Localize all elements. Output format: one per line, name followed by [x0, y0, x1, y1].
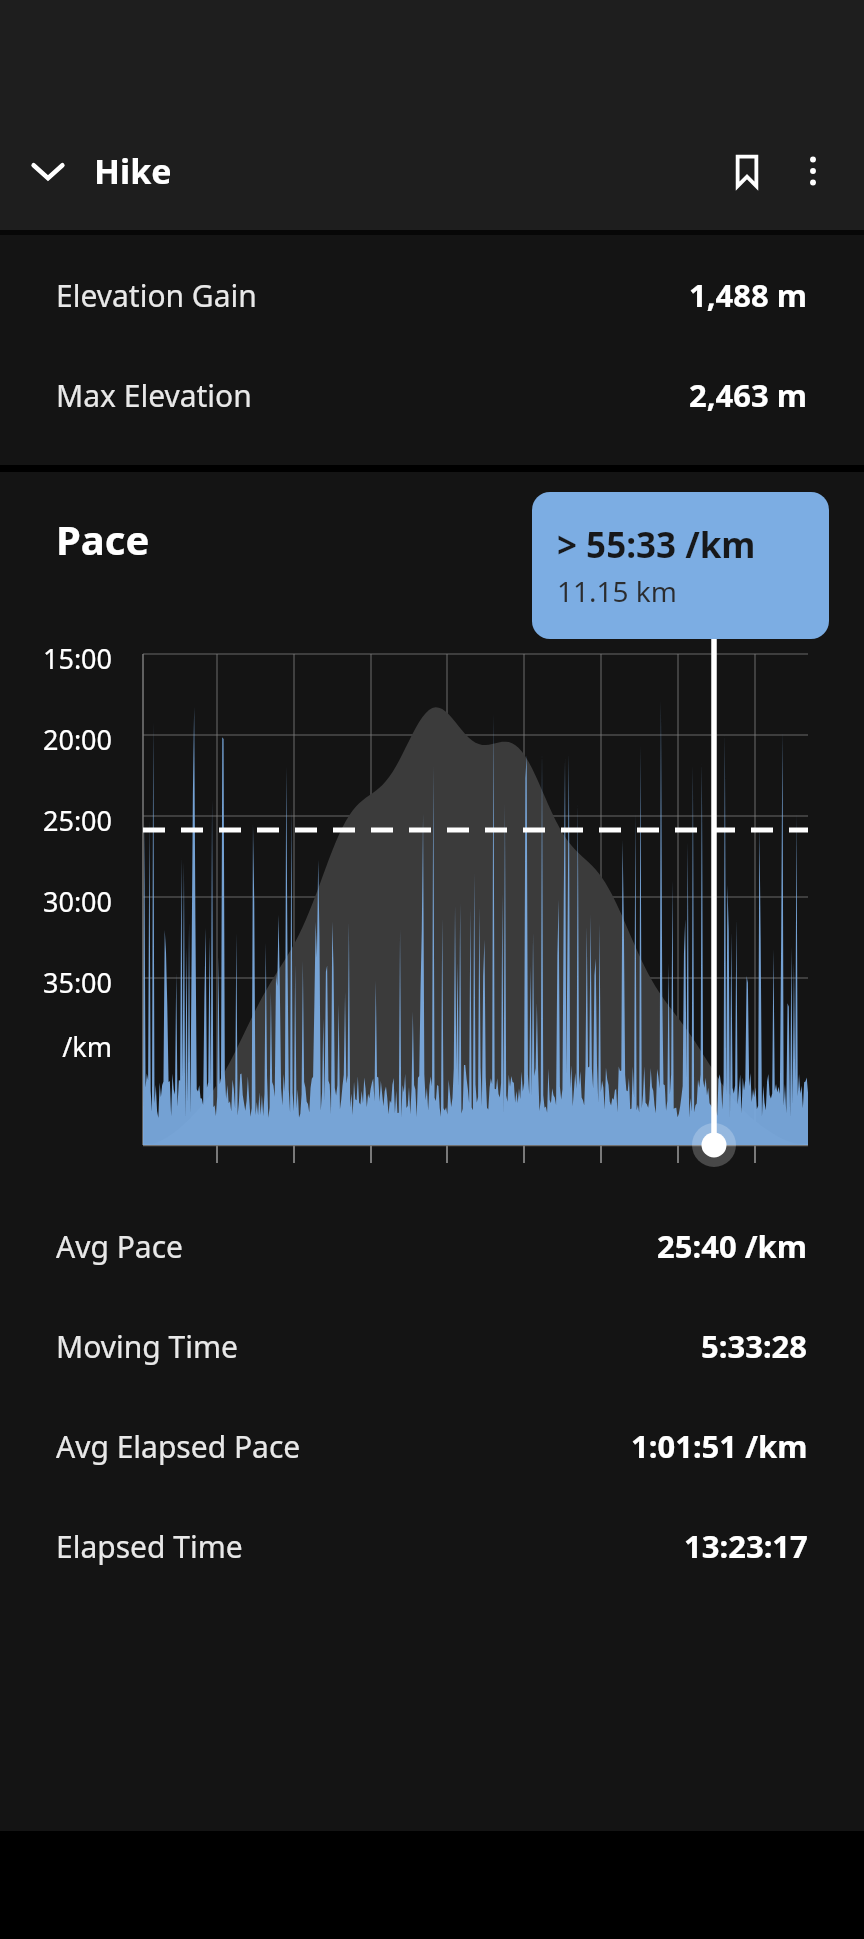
- staticText: 25:00: [0, 802, 112, 839]
- staticText: /km: [0, 1028, 112, 1065]
- staticText: 4 km: [239, 1110, 349, 1147]
- staticText: 11.15 km: [557, 572, 677, 610]
- staticText: 15:00: [0, 640, 112, 677]
- staticText: 5:33:28: [701, 1325, 808, 1367]
- button[interactable]: Moving Time: [0, 1296, 864, 1396]
- staticText: 35:00: [0, 964, 112, 1001]
- staticText: Hike: [94, 148, 172, 194]
- staticText: Moving Time: [56, 1326, 238, 1367]
- staticText: Pace: [56, 512, 150, 566]
- button[interactable]: Elapsed Time: [0, 1496, 864, 1596]
- button[interactable]: Avg Pace: [0, 1196, 864, 1296]
- staticText: 20:00: [0, 721, 112, 758]
- staticText: 10 km: [469, 1110, 579, 1147]
- staticText: 1,488 m: [689, 274, 808, 316]
- staticText: 2 km: [162, 1110, 272, 1147]
- staticText: 12 km: [546, 1110, 656, 1147]
- staticText: Avg Pace: [56, 1226, 183, 1267]
- staticText: Avg Elapsed Pace: [56, 1426, 301, 1467]
- button[interactable]: Collapse: [18, 141, 78, 201]
- staticText: Max Elevation: [56, 375, 252, 416]
- staticText: Elapsed Time: [56, 1526, 243, 1567]
- staticText: 1:01:51 /km: [631, 1425, 808, 1467]
- staticText: 8 km: [392, 1110, 502, 1147]
- staticText: Elevation Gain: [56, 275, 257, 316]
- button[interactable]: Max Elevation: [0, 345, 864, 445]
- button[interactable]: Elevation Gain: [0, 245, 864, 345]
- staticText: 2,463 m: [689, 374, 808, 416]
- staticText: 13:23:17: [684, 1525, 808, 1567]
- button[interactable]: > 55:33 /km: [532, 492, 829, 639]
- button[interactable]: Bookmark: [714, 138, 780, 204]
- button[interactable]: More options: [780, 138, 846, 204]
- staticText: > 55:33 /km: [557, 521, 756, 569]
- staticText: 30:00: [0, 883, 112, 920]
- staticText: 25:40 /km: [657, 1225, 808, 1267]
- button[interactable]: Avg Elapsed Pace: [0, 1396, 864, 1496]
- staticText: 6 km: [316, 1110, 426, 1147]
